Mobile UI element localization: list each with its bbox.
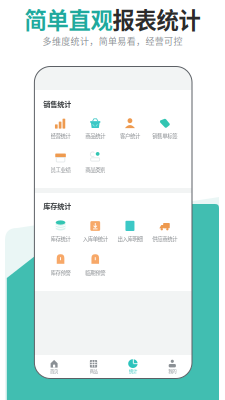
button[interactable]: 统计: [113, 355, 153, 378]
staticText: 出入库明细: [117, 235, 142, 243]
staticText: 统计: [129, 368, 137, 374]
staticText: 库存统计: [51, 235, 71, 243]
staticText: 商品统计: [85, 132, 105, 140]
button[interactable]: 供应商统计: [147, 220, 182, 243]
staticText: 客户统计: [120, 132, 140, 140]
staticText: 我的: [168, 368, 176, 374]
button[interactable]: 销售单标签: [147, 117, 182, 140]
button[interactable]: 商品: [74, 355, 113, 378]
button[interactable]: 入库单统计: [78, 220, 113, 243]
staticText: 多维度统计，简单易看，经营可控: [43, 34, 182, 47]
staticText: 商品类别: [85, 166, 105, 173]
staticText: 商品: [89, 368, 97, 374]
staticText: 简单直观: [24, 3, 112, 35]
staticText: 销售单标签: [152, 132, 177, 140]
button[interactable]: 出入库明细: [113, 220, 147, 243]
button[interactable]: 员工业绩: [43, 151, 78, 174]
button[interactable]: 库存统计: [43, 220, 78, 243]
button[interactable]: 经营统计: [43, 117, 78, 140]
staticText: 临期预警: [85, 269, 105, 276]
button[interactable]: 客户统计: [113, 117, 147, 140]
staticText: 入库单统计: [83, 235, 108, 243]
staticText: 库存统计: [43, 201, 71, 211]
button[interactable]: 首页: [34, 355, 74, 378]
button[interactable]: 我的: [153, 355, 192, 378]
staticText: 员工业绩: [51, 166, 71, 173]
button[interactable]: 库存预警: [43, 254, 78, 277]
staticText: 销售统计: [43, 99, 71, 109]
staticText: 首页: [50, 368, 58, 374]
button[interactable]: 临期预警: [78, 254, 113, 277]
staticText: 库存预警: [51, 269, 71, 276]
staticText: 经营统计: [51, 132, 71, 140]
button[interactable]: 商品统计: [78, 117, 113, 140]
button[interactable]: 商品类别: [78, 151, 113, 174]
staticText: 报表统计: [112, 3, 200, 35]
staticText: 供应商统计: [152, 235, 177, 243]
